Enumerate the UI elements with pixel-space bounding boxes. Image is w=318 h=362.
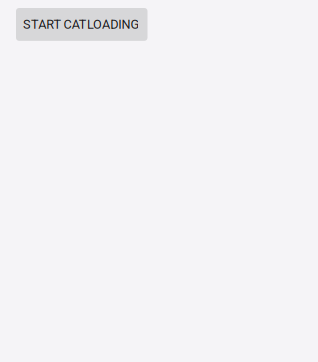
button[interactable]: START CATLOADING [16,8,147,41]
staticText: START CATLOADING [23,17,139,32]
